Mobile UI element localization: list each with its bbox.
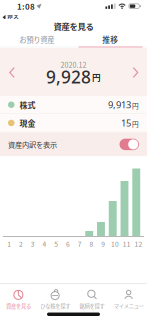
staticText: 10 xyxy=(111,239,119,249)
button[interactable]: 株式 xyxy=(0,96,147,113)
staticText: 銘柄を探す xyxy=(79,302,104,310)
staticText: 9,913 xyxy=(108,98,131,111)
staticText: 11 xyxy=(123,239,131,249)
staticText: 資産内訳を表示 xyxy=(8,139,57,150)
staticText: マイメニュー xyxy=(114,302,144,310)
staticText: 1:08 xyxy=(17,0,35,12)
staticText: 7 xyxy=(78,239,82,249)
staticText: 推移 xyxy=(102,34,118,45)
staticText: 1 xyxy=(7,239,11,249)
staticText: 円 xyxy=(132,101,139,111)
staticText: 9 xyxy=(101,239,105,249)
button[interactable]: Next month xyxy=(132,63,147,81)
button[interactable]: ひな株を探す xyxy=(37,287,74,312)
button[interactable]: マイメニュー xyxy=(110,287,147,312)
staticText: 2020.12 xyxy=(60,59,86,70)
staticText: 戻る xyxy=(7,13,19,22)
staticText: 現金 xyxy=(19,117,35,129)
staticText: 5 xyxy=(54,239,58,249)
button[interactable]: 現金 xyxy=(0,114,147,132)
button[interactable]: 資産を見る xyxy=(0,287,37,312)
staticText: 6 xyxy=(66,239,70,249)
button[interactable]: 推移 xyxy=(73,33,147,46)
button[interactable]: お預り資産 xyxy=(0,33,73,46)
staticText: 3 xyxy=(31,239,35,249)
staticText: 12 xyxy=(134,239,142,249)
button[interactable]: 資産内訳を表示 xyxy=(0,132,147,156)
button[interactable]: 銘柄を探す xyxy=(73,287,110,312)
staticText: 資産を見る xyxy=(6,302,31,310)
staticText: ひな株を探す xyxy=(40,302,70,310)
staticText: お預り資産 xyxy=(19,34,54,45)
staticText: 資産を見る xyxy=(53,20,93,32)
staticText: 4 xyxy=(42,239,46,249)
staticText: 円 xyxy=(132,119,139,129)
staticText: 円 xyxy=(92,71,101,83)
staticText: 2 xyxy=(19,239,23,249)
button[interactable]: Previous month xyxy=(0,63,14,81)
staticText: 9,928 xyxy=(46,65,91,88)
staticText: 15 xyxy=(121,117,131,129)
staticText: 株式 xyxy=(19,99,35,111)
staticText: 8 xyxy=(89,239,93,249)
